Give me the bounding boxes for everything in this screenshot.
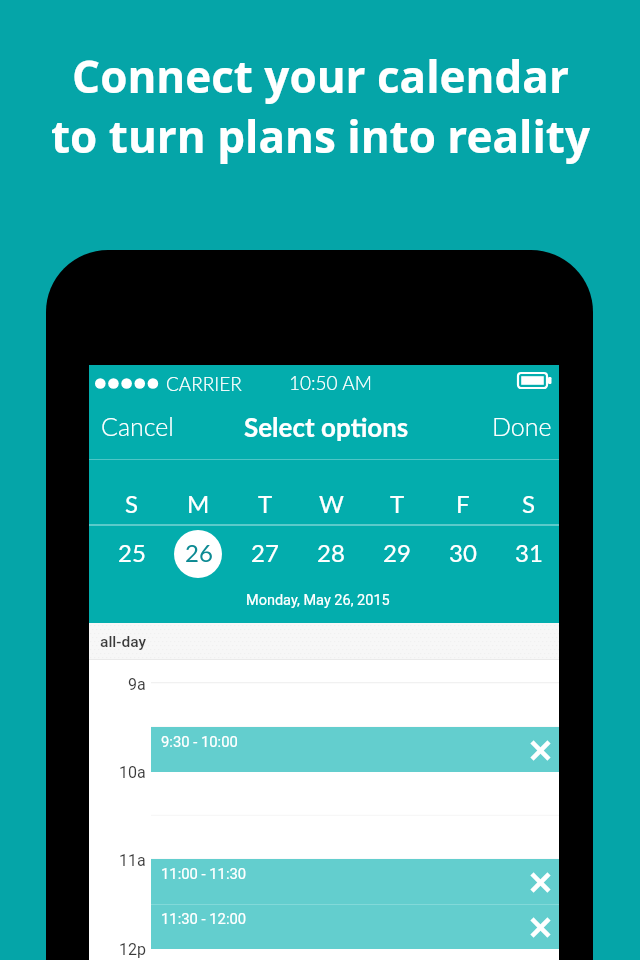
button[interactable]: 30 <box>430 527 496 577</box>
staticText: 10a <box>119 763 146 782</box>
staticText: 25 <box>118 538 146 567</box>
button[interactable]: 9:30 - 10:00 <box>151 727 559 772</box>
staticText: F <box>456 489 470 518</box>
staticText: 9a <box>128 675 146 694</box>
button[interactable]: Remove event <box>525 735 555 765</box>
button[interactable]: 25 <box>98 527 165 577</box>
staticText: S <box>125 489 139 518</box>
button[interactable]: 11:00 - 11:30 <box>151 859 559 904</box>
staticText: 30 <box>449 538 477 567</box>
staticText: Monday, May 26, 2015 <box>246 592 390 609</box>
staticText: Cancel <box>101 411 174 441</box>
staticText: T <box>390 489 405 518</box>
button[interactable]: 27 <box>232 527 298 577</box>
button[interactable]: Remove event <box>525 912 555 942</box>
staticText: 31 <box>515 538 543 567</box>
staticText: 11:30 - 12:00 <box>161 910 247 927</box>
button[interactable]: 28 <box>298 527 364 577</box>
staticText: 28 <box>317 538 345 567</box>
staticText: to turn plans into reality <box>51 106 590 166</box>
button[interactable] <box>174 530 222 578</box>
button[interactable]: 29 <box>364 527 430 577</box>
staticText: S <box>522 489 536 518</box>
staticText: 12p <box>119 940 146 959</box>
staticText: 26 <box>185 538 213 567</box>
button[interactable]: Done <box>476 401 559 451</box>
button[interactable]: 11:30 - 12:00 <box>151 904 559 949</box>
staticText: 10:50 AM <box>289 371 372 394</box>
button[interactable]: 26 <box>165 527 232 577</box>
staticText: CARRIER <box>166 372 242 395</box>
staticText: Connect your calendar <box>72 46 569 106</box>
staticText: Select options <box>244 411 409 442</box>
staticText: Done <box>492 411 552 441</box>
button[interactable]: Remove event <box>525 867 555 897</box>
button[interactable]: 31 <box>496 527 559 577</box>
staticText: 11a <box>119 851 146 870</box>
staticText: all-day <box>100 633 147 651</box>
staticText: 29 <box>383 538 411 567</box>
staticText: 11:00 - 11:30 <box>161 865 247 882</box>
staticText: M <box>187 489 210 518</box>
staticText: 9:30 - 10:00 <box>161 733 238 750</box>
staticText: 27 <box>251 538 279 567</box>
button[interactable]: Cancel <box>89 401 190 451</box>
staticText: T <box>258 489 273 518</box>
staticText: W <box>319 489 344 518</box>
